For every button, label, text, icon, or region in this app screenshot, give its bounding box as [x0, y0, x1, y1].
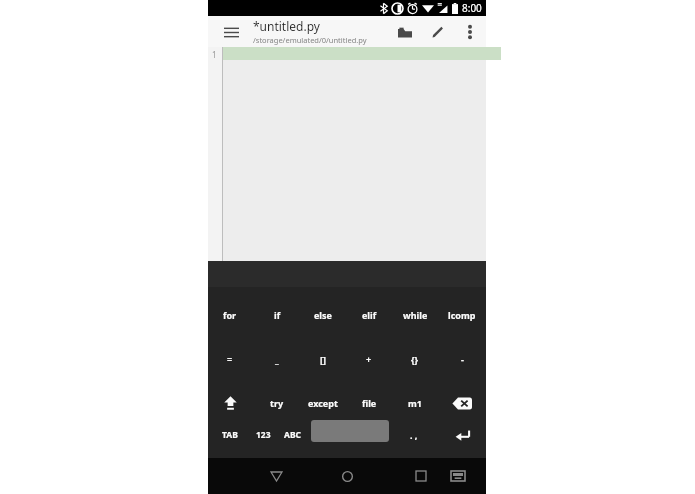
staticText: *untitled.py [253, 18, 320, 34]
button[interactable]: {} [393, 339, 437, 379]
staticText: for [223, 309, 237, 321]
staticText: try [270, 397, 284, 409]
staticText: 123 [256, 429, 271, 441]
staticText: 8:00 [462, 1, 482, 15]
button[interactable]: if [255, 295, 299, 335]
button[interactable]: Open file [393, 20, 417, 44]
staticText: m1 [408, 397, 422, 409]
button[interactable]: = [208, 339, 252, 379]
button[interactable]: 123 [250, 420, 276, 450]
button[interactable]: TAB [216, 420, 244, 450]
button[interactable]: _ [255, 339, 299, 379]
button[interactable]: try [255, 383, 299, 423]
button[interactable]: 1 [208, 47, 486, 261]
staticText: _ [275, 353, 279, 365]
button[interactable]: + [347, 339, 391, 379]
button[interactable]: - [440, 339, 484, 379]
button[interactable]: while [393, 295, 437, 335]
button[interactable]: Backspace [440, 383, 484, 423]
button[interactable]: Switch keyboard [440, 458, 476, 494]
button[interactable]: m1 [393, 383, 437, 423]
button[interactable]: [] [301, 339, 345, 379]
staticText: while [403, 309, 428, 321]
staticText: + [366, 353, 372, 365]
button[interactable]: file [347, 383, 391, 423]
button[interactable]: Edit [425, 20, 449, 44]
staticText: 1 [212, 49, 217, 60]
staticText: /storage/emulated/0/untitled.py [253, 35, 367, 45]
staticText: ABC [284, 429, 301, 441]
button[interactable]: Shift [208, 383, 252, 423]
button[interactable]: lcomp [440, 295, 484, 335]
staticText: elif [362, 309, 377, 321]
button[interactable]: elif [347, 295, 391, 335]
staticText: except [308, 397, 338, 409]
staticText: lcomp [448, 309, 476, 321]
button[interactable]: Enter [440, 420, 484, 450]
button[interactable]: Home [327, 458, 367, 494]
button[interactable]: ABC [278, 420, 306, 450]
staticText: . , [410, 429, 418, 441]
button[interactable]: Back [256, 458, 296, 494]
staticText: else [314, 309, 332, 321]
button[interactable]: Open navigation menu [218, 19, 244, 45]
staticText: file [362, 397, 377, 409]
button[interactable]: else [301, 295, 345, 335]
staticText: - [461, 353, 464, 365]
staticText: = [227, 353, 233, 365]
staticText: {} [411, 353, 419, 365]
staticText: [] [320, 353, 326, 365]
button[interactable]: except [301, 383, 345, 423]
button[interactable]: for [208, 295, 252, 335]
staticText: TAB [222, 429, 238, 441]
button[interactable]: . , [396, 420, 432, 450]
button[interactable]: More options [458, 20, 482, 44]
button[interactable]: Recent apps [403, 458, 439, 494]
staticText: if [274, 309, 281, 321]
button[interactable]: Space [311, 420, 389, 442]
